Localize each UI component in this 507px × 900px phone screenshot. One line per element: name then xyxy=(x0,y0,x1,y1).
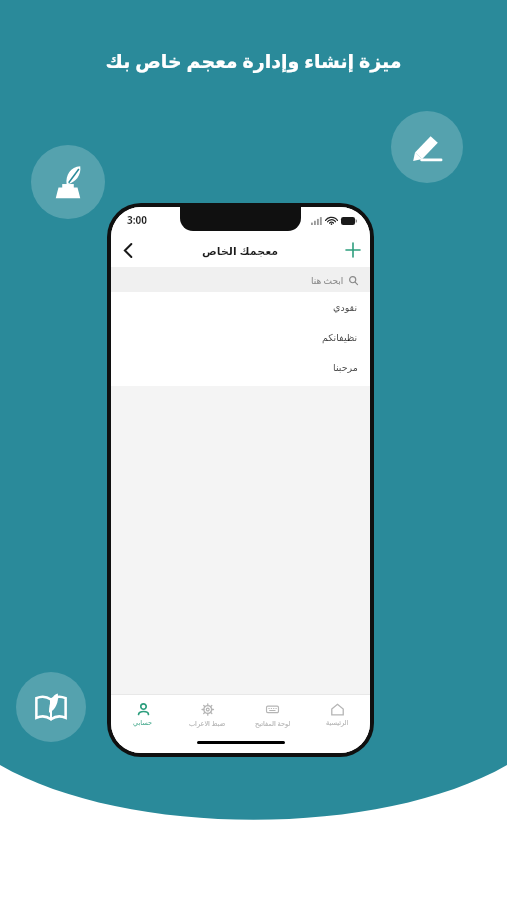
staticText: نقودي xyxy=(333,302,358,313)
staticText: معجمك الخاص xyxy=(202,243,279,258)
button[interactable]: ابحث هنا xyxy=(111,267,370,292)
button[interactable]: نقودي xyxy=(111,292,370,322)
staticText: ابحث هنا xyxy=(311,274,344,286)
button[interactable]: ضبط الاعراب xyxy=(175,695,240,735)
button[interactable]: Edit xyxy=(391,111,463,183)
button[interactable]: لوحة المفاتيح xyxy=(240,695,305,735)
button[interactable]: نظيفانكم xyxy=(111,322,370,352)
button[interactable]: الرئيسية xyxy=(305,695,370,735)
button[interactable]: Dictionary xyxy=(16,672,86,742)
staticText: ميزة إنشاء وإدارة معجم خاص بك xyxy=(24,48,483,74)
staticText: 3:00 xyxy=(127,213,147,227)
button[interactable]: Write xyxy=(31,145,105,219)
staticText: مرحبنا xyxy=(333,362,358,373)
staticText: ضبط الاعراب xyxy=(189,719,226,728)
staticText: لوحة المفاتيح xyxy=(255,719,291,728)
button[interactable]: Back xyxy=(111,233,145,267)
button[interactable]: مرحبنا xyxy=(111,352,370,382)
button[interactable]: حسابي xyxy=(111,695,175,735)
staticText: الرئيسية xyxy=(326,719,349,727)
staticText: حسابي xyxy=(133,719,153,727)
staticText: نظيفانكم xyxy=(322,332,358,343)
button[interactable]: Add xyxy=(336,233,370,267)
